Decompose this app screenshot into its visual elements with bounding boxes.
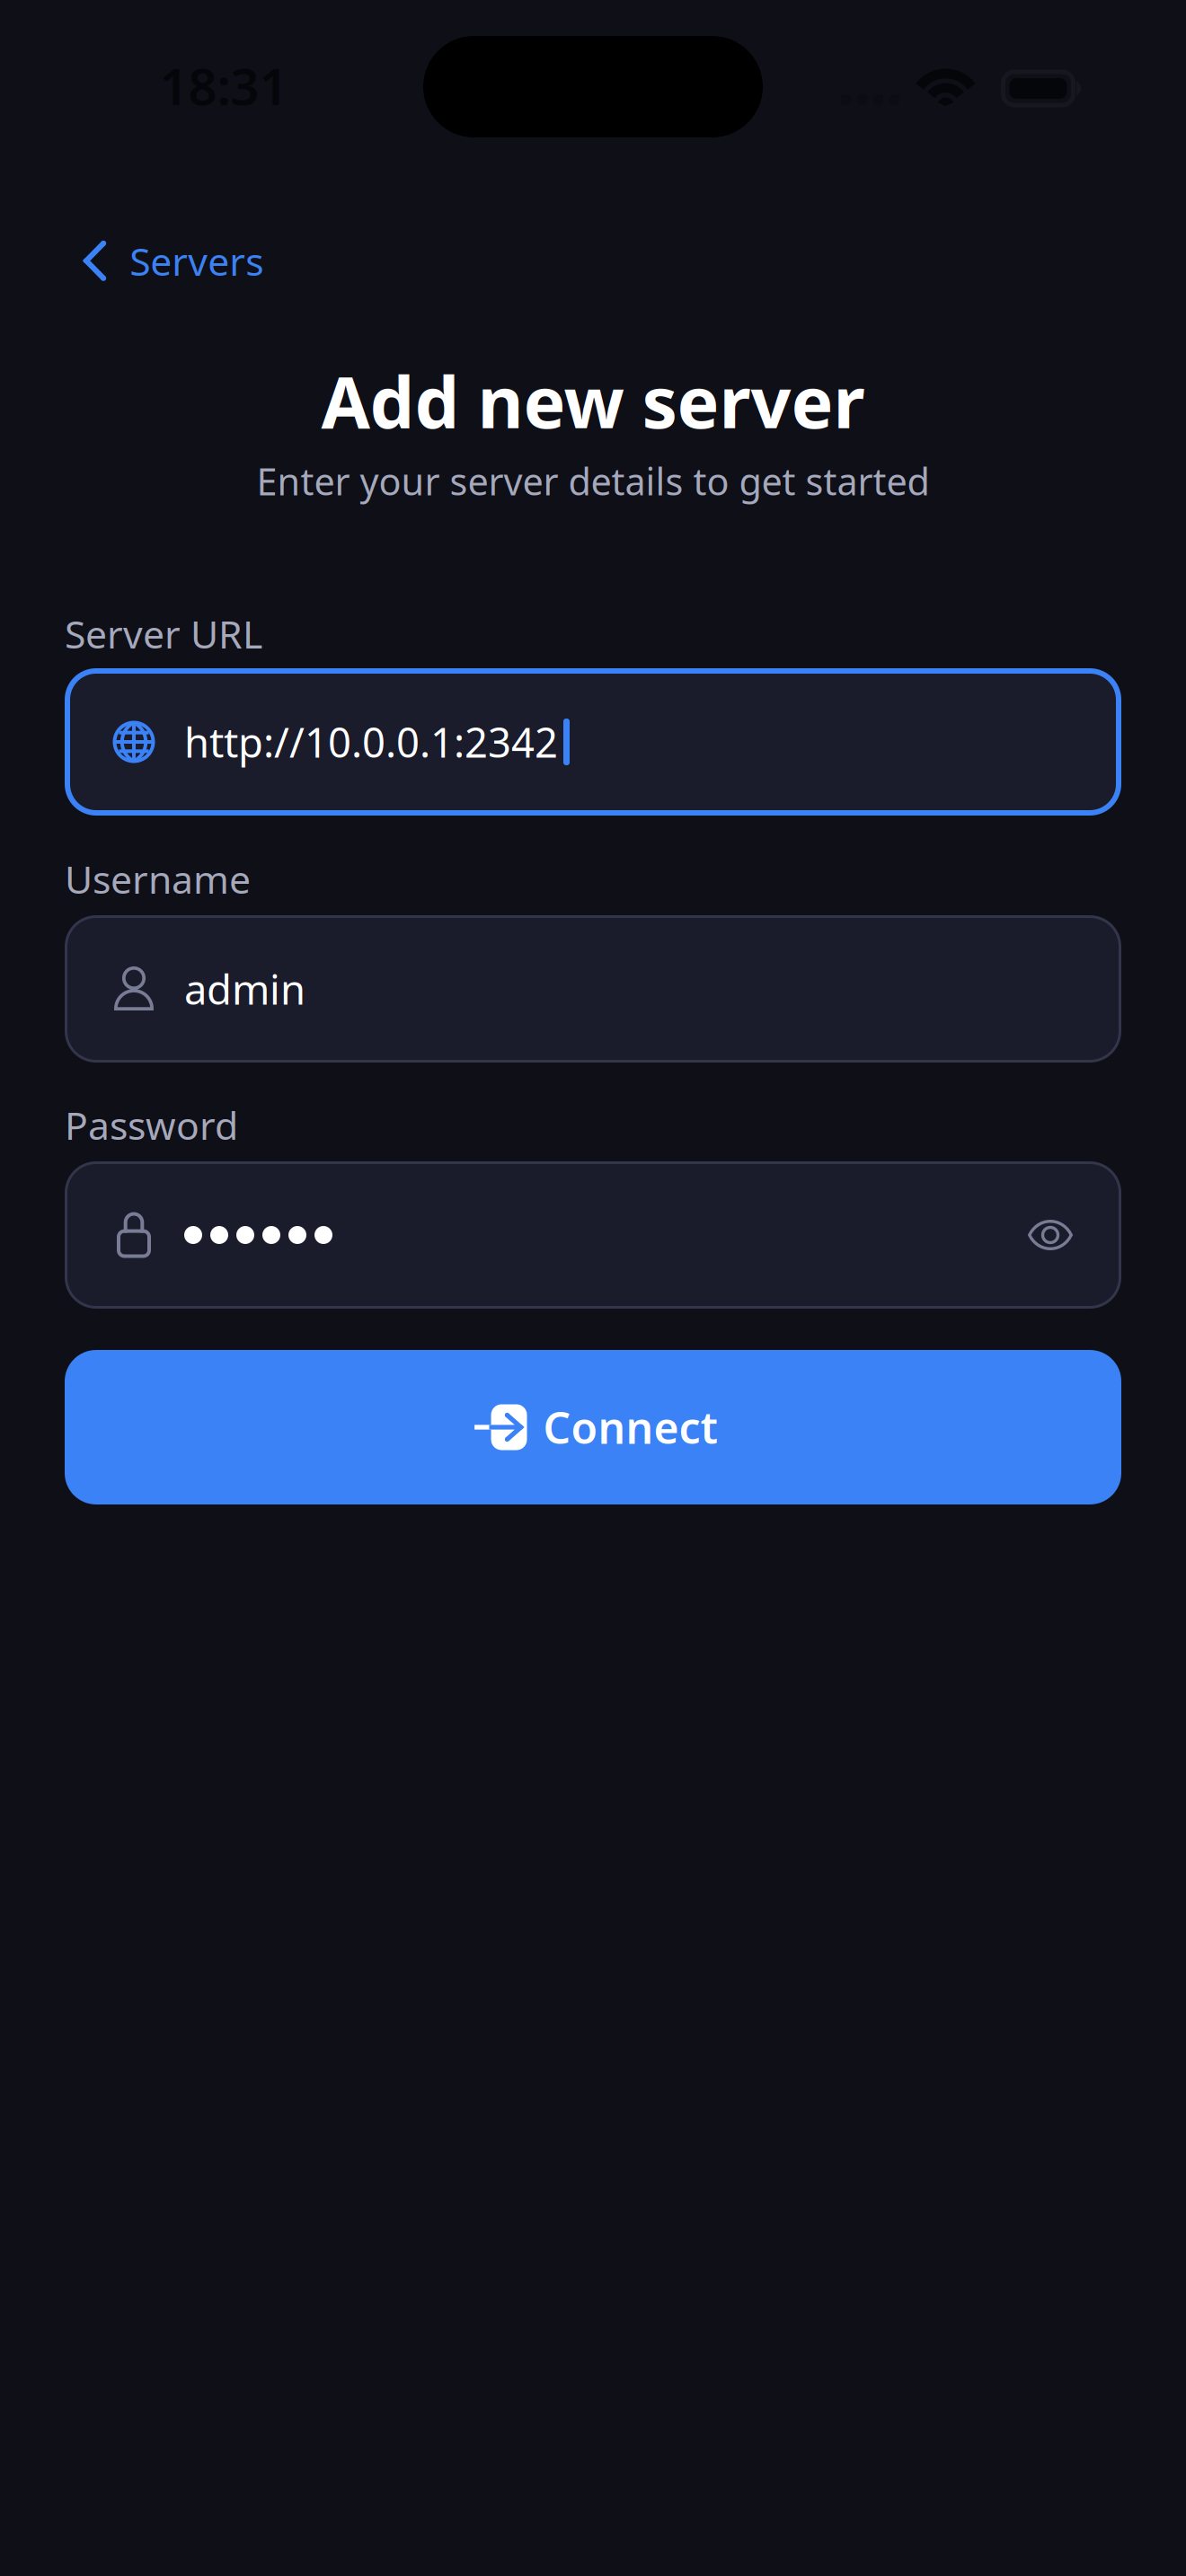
staticText: Enter your server details to get started (257, 456, 929, 506)
staticText: Connect (543, 1399, 717, 1456)
staticText: Servers (130, 235, 263, 286)
staticText: http://10.0.0.1:2342 (184, 715, 558, 769)
staticText: Add new server (321, 354, 865, 448)
button[interactable]: Connect (65, 1350, 1121, 1504)
button[interactable]: Servers (0, 216, 299, 306)
staticText: Server URL (65, 608, 262, 659)
staticText: admin (184, 962, 305, 1016)
staticText: Username (65, 853, 251, 904)
button[interactable]: Show password (1028, 1210, 1073, 1260)
staticText: Password (65, 1099, 238, 1150)
staticText: 18:31 (159, 52, 288, 119)
